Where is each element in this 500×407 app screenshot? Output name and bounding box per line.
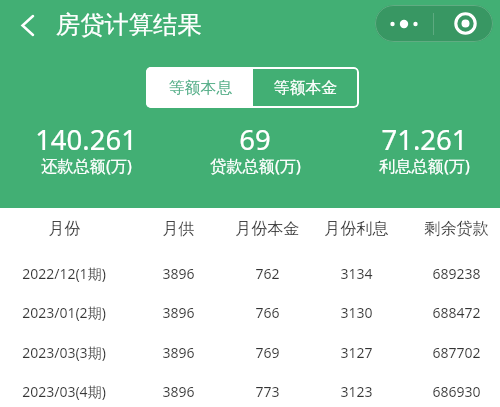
staticText: 686930 bbox=[432, 382, 481, 401]
staticText: 3896 bbox=[162, 303, 195, 322]
button[interactable]: More options bbox=[375, 5, 433, 42]
button[interactable]: Close mini program bbox=[434, 5, 493, 42]
staticText: 月份利息 bbox=[324, 218, 389, 238]
staticText: 3123 bbox=[340, 382, 373, 401]
staticText: 3130 bbox=[340, 303, 373, 322]
staticText: 71.261 bbox=[381, 121, 468, 158]
staticText: 3896 bbox=[162, 264, 195, 283]
staticText: 762 bbox=[255, 264, 280, 283]
staticText: 剩余贷款 bbox=[424, 218, 489, 238]
staticText: 773 bbox=[255, 382, 280, 401]
staticText: 2023/03(4期) bbox=[22, 382, 106, 401]
staticText: 利息总额(万) bbox=[379, 155, 470, 177]
staticText: 3134 bbox=[340, 264, 373, 283]
staticText: 3896 bbox=[162, 343, 195, 362]
staticText: 688472 bbox=[432, 303, 481, 322]
staticText: 月供 bbox=[162, 218, 195, 238]
staticText: 贷款总额(万) bbox=[210, 155, 301, 177]
staticText: 等额本金 bbox=[274, 78, 338, 98]
button[interactable]: 等额本金 bbox=[253, 67, 359, 108]
staticText: 3896 bbox=[162, 382, 195, 401]
staticText: 766 bbox=[255, 303, 280, 322]
staticText: 还款总额(万) bbox=[41, 155, 132, 177]
staticText: 月份 bbox=[48, 218, 81, 238]
staticText: 3127 bbox=[340, 343, 373, 362]
staticText: 2023/03(3期) bbox=[22, 343, 106, 362]
staticText: 69 bbox=[239, 121, 271, 158]
staticText: 等额本息 bbox=[169, 78, 233, 98]
staticText: 687702 bbox=[432, 343, 481, 362]
button[interactable]: 等额本息 bbox=[146, 67, 253, 108]
button[interactable]: Back bbox=[9, 7, 45, 43]
staticText: 769 bbox=[255, 343, 280, 362]
staticText: 2023/01(2期) bbox=[22, 303, 106, 322]
staticText: 月份本金 bbox=[235, 218, 300, 238]
staticText: 房贷计算结果 bbox=[56, 10, 202, 41]
staticText: 2022/12(1期) bbox=[22, 264, 106, 283]
staticText: 689238 bbox=[432, 264, 481, 283]
staticText: 140.261 bbox=[35, 121, 137, 158]
